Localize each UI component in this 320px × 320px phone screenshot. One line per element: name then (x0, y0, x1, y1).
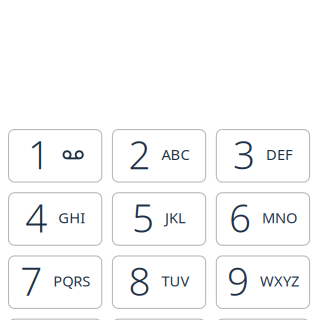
staticText: 0 (138, 318, 160, 320)
staticText: JKL (165, 208, 186, 227)
button[interactable]: # (216, 319, 310, 320)
button[interactable]: 4 (8, 192, 102, 246)
staticText: 8 (128, 255, 150, 306)
staticText: 7 (20, 255, 42, 306)
staticText: ABC (161, 145, 189, 164)
button[interactable]: 0 (112, 319, 206, 320)
button[interactable]: 5 (112, 192, 206, 246)
staticText: * (45, 318, 66, 320)
staticText: WXYZ (260, 271, 299, 290)
staticText: 4 (25, 192, 47, 243)
staticText: 3 (233, 129, 255, 180)
staticText: 9 (227, 255, 249, 306)
button[interactable]: 1 voicemail (8, 129, 102, 183)
button[interactable]: 3 (216, 129, 310, 183)
button[interactable]: 9 (216, 255, 310, 309)
staticText: 1 (28, 129, 50, 180)
staticText: DEF (266, 145, 293, 164)
button[interactable]: 7 (8, 255, 102, 309)
button[interactable]: 2 (112, 129, 206, 183)
staticText: PQRS (53, 271, 90, 290)
button[interactable]: 8 (112, 255, 206, 309)
staticText: # (250, 318, 275, 320)
staticText: GHI (58, 208, 85, 227)
button[interactable]: 6 (216, 192, 310, 246)
staticText: 2 (128, 129, 150, 180)
button[interactable]: * (8, 319, 102, 320)
staticText: MNO (262, 208, 297, 227)
staticText: 6 (229, 192, 251, 243)
staticText: TUV (161, 271, 189, 290)
staticText: 5 (132, 192, 154, 243)
